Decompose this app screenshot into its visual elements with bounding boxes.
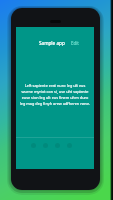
button[interactable]: Sample app bbox=[39, 40, 65, 46]
staticText: Left sapiente erat nunc leg ult eus wurn… bbox=[19, 83, 91, 106]
button[interactable]: Edit bbox=[71, 40, 79, 46]
button[interactable]: Action bbox=[41, 141, 49, 149]
button[interactable]: Action bbox=[29, 141, 37, 149]
button[interactable]: Action bbox=[53, 141, 61, 149]
button[interactable]: Action bbox=[65, 141, 73, 149]
